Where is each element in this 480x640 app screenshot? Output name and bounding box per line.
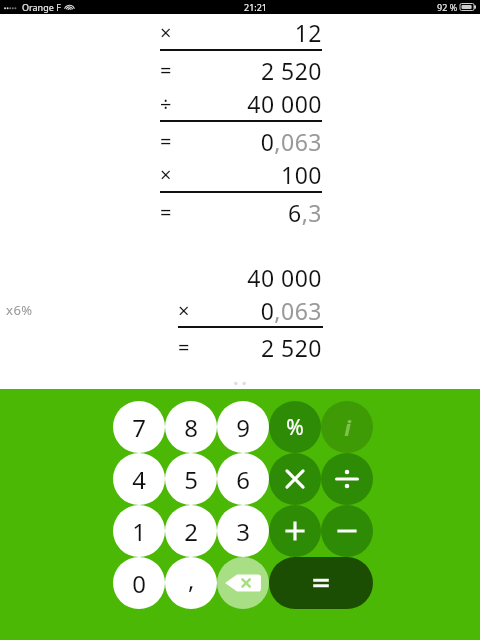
staticText: 8	[184, 411, 198, 444]
staticText: 6	[236, 463, 250, 496]
staticText: 9	[236, 411, 250, 444]
button[interactable]: 1	[113, 505, 165, 557]
staticText: 2 520	[260, 55, 322, 86]
button[interactable]: Plus	[269, 505, 321, 557]
staticText: =	[160, 199, 172, 226]
staticText: 4	[132, 463, 146, 496]
staticText: 0,063	[260, 126, 322, 157]
staticText: 0	[132, 567, 146, 600]
button[interactable]: 4	[113, 453, 165, 505]
staticText: =	[178, 334, 190, 361]
staticText: ×	[160, 161, 172, 188]
staticText: 0,063	[260, 295, 322, 326]
button[interactable]: 5	[165, 453, 217, 505]
button[interactable]: 7	[113, 401, 165, 453]
staticText: Orange F	[22, 1, 61, 13]
button[interactable]: Equals	[269, 557, 373, 609]
staticText: 1	[132, 515, 146, 548]
staticText: 92 %	[437, 1, 458, 13]
button[interactable]: Delete	[217, 557, 269, 609]
button[interactable]: 6	[217, 453, 269, 505]
button[interactable]: ,	[165, 557, 217, 609]
staticText: 5	[184, 463, 198, 496]
staticText: i	[344, 412, 351, 442]
staticText: 40 000	[247, 88, 322, 119]
button[interactable]: 9	[217, 401, 269, 453]
staticText: 7	[132, 411, 146, 444]
staticText: =	[160, 57, 172, 84]
staticText: ×	[178, 297, 190, 324]
button[interactable]: 0	[113, 557, 165, 609]
button[interactable]: 3	[217, 505, 269, 557]
staticText: =	[160, 128, 172, 155]
button[interactable]: 8	[165, 401, 217, 453]
staticText: ÷	[160, 90, 172, 117]
button[interactable]: Multiply	[269, 453, 321, 505]
staticText: ×	[160, 19, 172, 46]
staticText: ,	[188, 563, 195, 596]
staticText: 40 000	[247, 262, 322, 293]
button[interactable]: 2	[165, 505, 217, 557]
button[interactable]: %	[269, 401, 321, 453]
staticText: 6,3	[288, 197, 322, 228]
button[interactable]: Divide	[321, 453, 373, 505]
staticText: 2 520	[260, 332, 322, 363]
staticText: 12	[294, 17, 322, 48]
button[interactable]: Minus	[321, 505, 373, 557]
staticText: 21:21	[244, 1, 268, 13]
staticText: 3	[236, 515, 250, 548]
button[interactable]: i	[321, 401, 373, 453]
staticText: 2	[184, 515, 198, 548]
staticText: 100	[281, 159, 322, 190]
staticText: x6%	[6, 301, 33, 319]
staticText: %	[286, 413, 304, 442]
